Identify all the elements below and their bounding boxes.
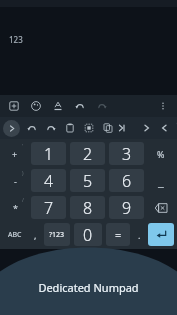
button[interactable]: 9 [109, 196, 144, 219]
button[interactable]: Undo [24, 120, 40, 136]
button[interactable]: - [3, 169, 27, 192]
staticText: _ [158, 172, 164, 190]
button[interactable]: Move right [157, 120, 173, 136]
staticText: 2 [83, 143, 93, 165]
staticText: * [13, 202, 18, 214]
staticText: 5 [83, 170, 93, 192]
staticText: ) [22, 170, 24, 177]
button[interactable]: Text format [50, 98, 66, 114]
staticText: . [138, 229, 141, 241]
staticText: 123 [9, 34, 23, 45]
button[interactable]: Copy [100, 120, 116, 136]
button[interactable]: Redo [94, 98, 110, 114]
staticText: = [115, 227, 122, 242]
button[interactable]: 2 [70, 142, 105, 165]
staticText: ' [22, 143, 24, 150]
button[interactable]: Move to start [119, 120, 135, 136]
staticText: 7 [44, 197, 54, 219]
button[interactable]: 5 [70, 169, 105, 192]
button[interactable]: Move left [138, 120, 154, 136]
button[interactable]: Theme [28, 98, 44, 114]
button[interactable]: * [3, 196, 27, 219]
button[interactable]: Select all [81, 120, 97, 136]
button[interactable]: Paste [62, 120, 78, 136]
button[interactable]: Redo [43, 120, 59, 136]
staticText: ?123 [49, 230, 65, 240]
button[interactable]: + [3, 142, 27, 165]
staticText: , [34, 229, 37, 241]
button[interactable]: More options [155, 98, 171, 114]
button[interactable]: ?123 [44, 223, 70, 246]
button[interactable]: , [31, 223, 40, 246]
button[interactable]: 0 [74, 223, 102, 246]
staticText: 4 [44, 170, 54, 192]
staticText: 0 [83, 224, 93, 246]
button[interactable]: 1 [31, 142, 66, 165]
button[interactable]: 3 [109, 142, 144, 165]
staticText: + [12, 148, 18, 160]
button[interactable]: 7 [31, 196, 66, 219]
staticText: 3 [122, 143, 132, 165]
button[interactable]: ABC [3, 223, 27, 246]
staticText: 9 [122, 197, 132, 219]
staticText: ABC [8, 230, 22, 240]
staticText: 1 [44, 143, 54, 165]
button[interactable]: Enter [148, 223, 174, 246]
staticText: % [157, 148, 165, 160]
button[interactable]: = [106, 223, 130, 246]
button[interactable]: Toolbox [6, 98, 22, 114]
button[interactable]: % [148, 142, 174, 165]
button[interactable]: 8 [70, 196, 105, 219]
button[interactable]: 4 [31, 169, 66, 192]
button[interactable]: Undo [72, 98, 88, 114]
staticText: Dedicated Numpad [38, 280, 139, 295]
staticText: 8 [83, 197, 93, 219]
staticText: - [14, 175, 17, 187]
button[interactable]: _ [148, 169, 174, 192]
button[interactable]: Collapse toolbar [3, 120, 20, 137]
button[interactable]: Move to end [176, 120, 177, 136]
button[interactable]: 6 [109, 169, 144, 192]
button[interactable]: . [134, 223, 144, 246]
button[interactable]: Backspace [148, 196, 174, 219]
staticText: / [22, 197, 24, 204]
staticText: 6 [122, 170, 132, 192]
